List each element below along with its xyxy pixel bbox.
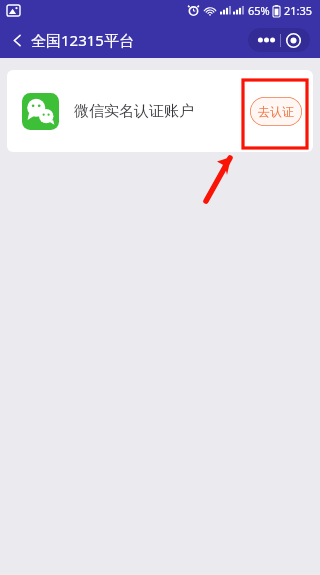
staticText: 去认证	[258, 104, 294, 119]
staticText: 微信实名认证账户	[74, 102, 194, 121]
button[interactable]: 更多	[248, 28, 310, 52]
staticText: 65%	[248, 3, 270, 18]
staticText: 21:35	[284, 3, 313, 18]
button[interactable]: 返回	[4, 27, 30, 53]
button[interactable]: 微信实名认证账户	[7, 70, 313, 152]
staticText: 全国12315平台	[31, 30, 134, 50]
button[interactable]: 去认证	[250, 97, 302, 126]
